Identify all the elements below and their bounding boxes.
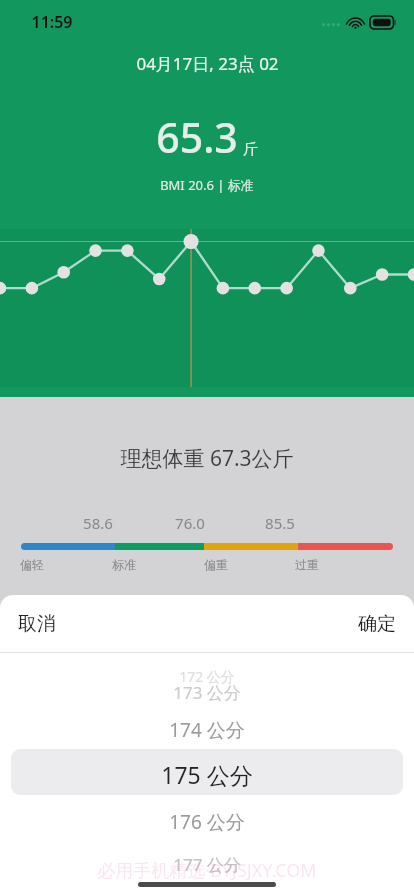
staticText: 172 公分 — [179, 667, 235, 686]
staticText: 58.6 — [83, 513, 113, 533]
staticText: 必用手机精选·BYJSJXY.COM — [97, 858, 317, 883]
staticText: 偏轻 — [20, 557, 44, 572]
button[interactable]: 172 公分 — [0, 659, 414, 693]
button[interactable]: 174 公分 — [0, 713, 414, 747]
staticText: 85.5 — [265, 513, 295, 533]
staticText: 斤 — [243, 140, 258, 159]
staticText: 173 公分 — [173, 681, 241, 704]
button[interactable]: 173 公分 — [0, 675, 414, 709]
staticText: 过重 — [295, 557, 319, 572]
staticText: 标准 — [112, 557, 136, 572]
staticText: 11:59 — [31, 11, 73, 33]
staticText: 76.0 — [175, 513, 205, 533]
staticText: 177 公分 — [173, 853, 241, 876]
staticText: 176 公分 — [169, 809, 245, 835]
button[interactable]: 176 公分 — [0, 805, 414, 839]
staticText: 04月17日, 23点 02 — [136, 52, 279, 75]
staticText: 取消 — [18, 612, 56, 636]
staticText: 确定 — [358, 612, 396, 636]
button[interactable]: 175 公分 — [0, 757, 414, 791]
staticText: 偏重 — [204, 557, 228, 572]
staticText: 175 公分 — [161, 759, 253, 790]
staticText: 174 公分 — [169, 717, 245, 743]
staticText: 65.3 — [156, 109, 238, 165]
button[interactable]: 177 公分 — [0, 847, 414, 881]
staticText: 理想体重 67.3公斤 — [120, 444, 294, 473]
button[interactable]: 确定 — [344, 602, 414, 646]
button[interactable]: 取消 — [0, 602, 70, 646]
staticText: BMI 20.6 | 标准 — [160, 176, 254, 194]
